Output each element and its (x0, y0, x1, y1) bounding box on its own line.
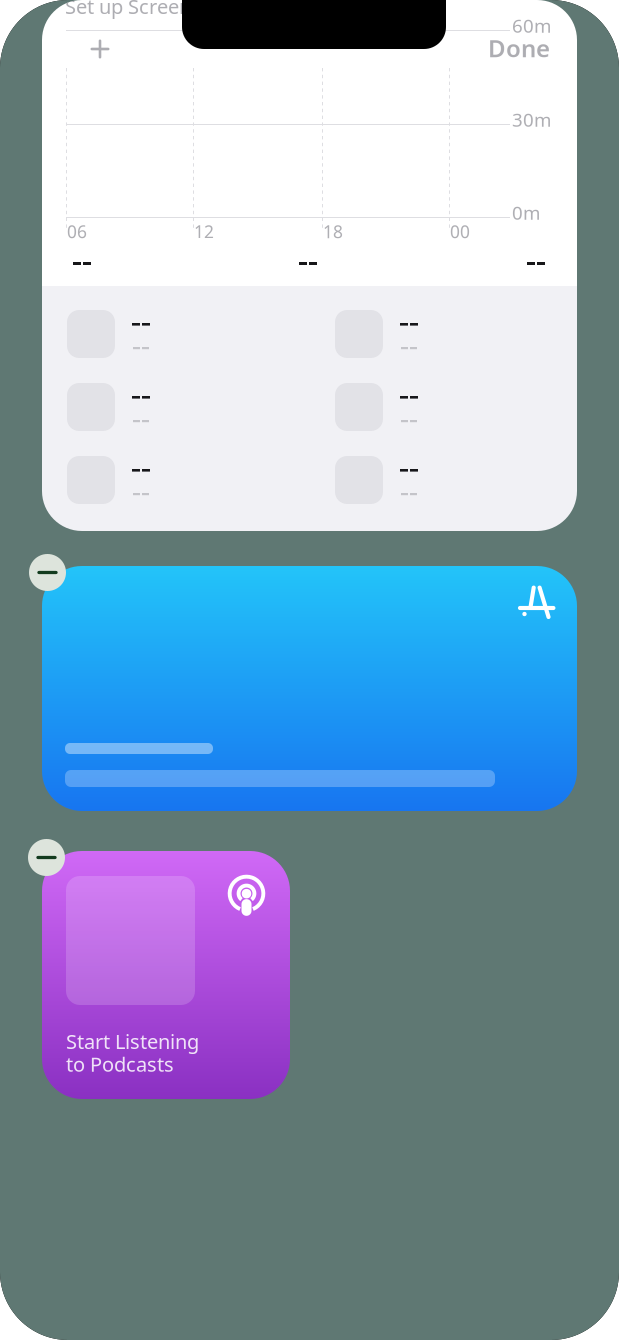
staticText: Done (488, 32, 550, 64)
staticText: 0m (512, 200, 540, 225)
button[interactable]: Screen Time widget (42, 0, 577, 531)
staticText: Set up Screen Time (65, 0, 242, 20)
button[interactable]: Add (80, 29, 120, 69)
staticText: 60m (512, 13, 551, 38)
staticText: 18 (323, 220, 343, 243)
staticText: 12 (194, 220, 214, 243)
button[interactable]: Done (488, 32, 550, 64)
button[interactable]: Remove widget (29, 554, 66, 591)
button[interactable]: App Store widget (42, 566, 577, 811)
button[interactable]: Remove widget (28, 839, 65, 876)
staticText: 06 (67, 220, 87, 243)
staticText: to Podcasts (66, 1051, 174, 1077)
button[interactable]: Podcasts widget (42, 851, 290, 1099)
staticText: 00 (450, 220, 470, 243)
staticText: 30m (512, 107, 551, 132)
staticText: Start Listening (66, 1028, 199, 1055)
